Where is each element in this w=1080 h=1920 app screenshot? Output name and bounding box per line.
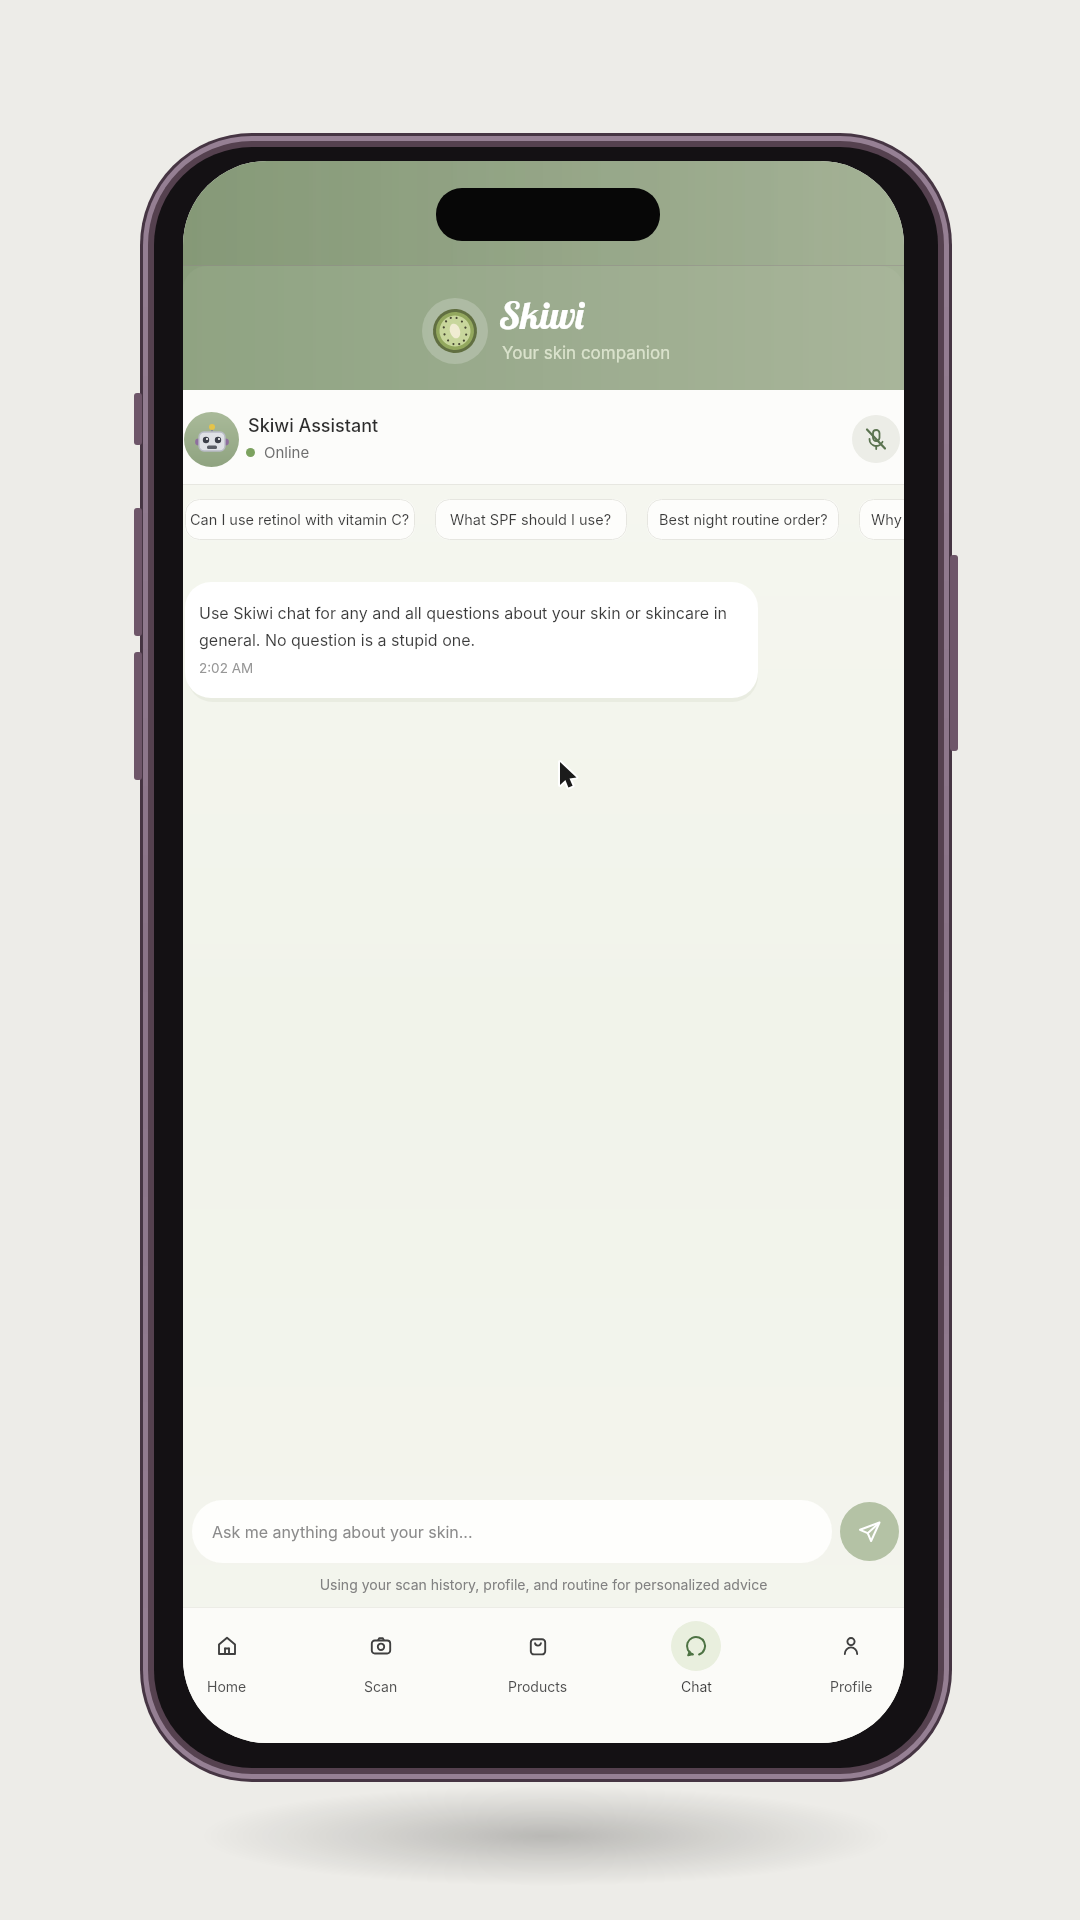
- staticText: Why do I break out?: [871, 511, 904, 529]
- staticText: Online: [264, 443, 310, 461]
- button[interactable]: Products: [498, 1623, 578, 1695]
- staticText: Scan: [364, 1678, 398, 1695]
- staticText: Ask me anything about your skin...: [212, 1522, 473, 1541]
- staticText: Use Skiwi chat for any and all questions…: [199, 603, 728, 622]
- staticText: Products: [508, 1678, 568, 1695]
- staticText: Skiwi Assistant: [248, 415, 379, 437]
- button[interactable]: Ask me anything about your skin...: [192, 1500, 832, 1563]
- staticText: Your skin companion: [502, 343, 671, 364]
- button[interactable]: What SPF should I use?: [435, 499, 627, 540]
- button[interactable]: Scan: [341, 1623, 421, 1695]
- staticText: Using your scan history, profile, and ro…: [183, 1576, 904, 1598]
- button[interactable]: Why do I break out?: [859, 499, 904, 540]
- staticText: Skiwi: [500, 291, 586, 339]
- button[interactable]: Chat: [656, 1623, 736, 1695]
- button[interactable]: [852, 415, 900, 463]
- button[interactable]: Profile: [811, 1623, 891, 1695]
- staticText: Best night routine order?: [659, 511, 828, 529]
- staticText: 2:02 AM: [199, 660, 254, 676]
- button[interactable]: Home: [187, 1623, 267, 1695]
- staticText: Home: [207, 1678, 247, 1695]
- staticText: Chat: [681, 1678, 712, 1695]
- button[interactable]: [840, 1502, 899, 1561]
- staticText: Profile: [830, 1678, 873, 1695]
- button[interactable]: Can I use retinol with vitamin C?: [185, 499, 415, 540]
- staticText: Can I use retinol with vitamin C?: [190, 511, 410, 529]
- staticText: What SPF should I use?: [450, 511, 612, 529]
- staticText: general. No question is a stupid one.: [199, 630, 476, 649]
- button[interactable]: Best night routine order?: [647, 499, 839, 540]
